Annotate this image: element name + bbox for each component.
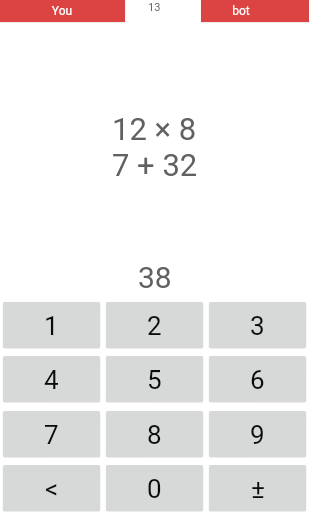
staticText: ± — [251, 474, 265, 504]
button[interactable]: Digit 2 — [106, 302, 203, 348]
button[interactable]: Digit 5 — [106, 356, 203, 402]
staticText: 38 — [138, 260, 172, 295]
button[interactable]: Digit 7 — [3, 411, 100, 457]
button[interactable]: Digit 1 — [3, 302, 100, 348]
staticText: 6 — [250, 365, 265, 395]
staticText: 9 — [250, 420, 265, 450]
staticText: 2 — [147, 311, 162, 341]
staticText: 4 — [44, 365, 59, 395]
staticText: 3 — [250, 311, 265, 341]
button[interactable]: Backspace — [3, 465, 100, 511]
button[interactable] — [201, 0, 309, 22]
button[interactable]: Digit 8 — [106, 411, 203, 457]
button[interactable]: Digit 6 — [209, 356, 306, 402]
button[interactable]: Digit 0 — [106, 465, 203, 511]
button[interactable]: Digit 3 — [209, 302, 306, 348]
staticText: 7 + 32 — [112, 147, 198, 183]
button[interactable]: Digit 9 — [209, 411, 306, 457]
staticText: 8 — [147, 420, 162, 450]
button[interactable]: Toggle sign — [209, 465, 306, 511]
staticText: 5 — [147, 365, 162, 395]
button[interactable] — [0, 0, 125, 22]
staticText: 12 × 8 — [112, 111, 197, 147]
staticText: 7 — [44, 420, 59, 450]
staticText: 0 — [147, 474, 162, 504]
staticText: < — [45, 474, 59, 504]
button[interactable]: Digit 4 — [3, 356, 100, 402]
staticText: bot — [221, 4, 261, 18]
staticText: 1 — [44, 311, 59, 341]
staticText: 13 — [148, 1, 161, 14]
staticText: You — [42, 4, 82, 18]
